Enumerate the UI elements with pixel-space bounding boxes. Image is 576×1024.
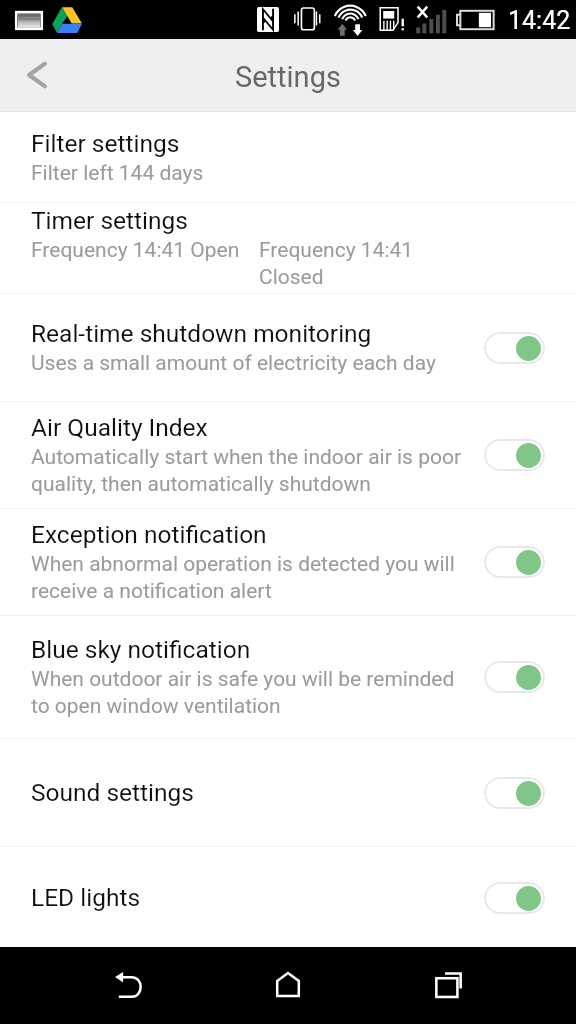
staticText: Exception notification [31, 520, 267, 549]
staticText: Frequency 14:41 Open [31, 238, 240, 263]
button[interactable]: Real-time shutdown monitoring [0, 294, 576, 401]
button[interactable]: Air Quality Index [0, 402, 576, 508]
staticText: Air Quality Index [31, 413, 208, 442]
staticText: Blue sky notification [31, 635, 251, 664]
staticText: Uses a small amount of electricity each … [31, 351, 436, 376]
staticText: Automatically start when the indoor air … [31, 445, 474, 497]
button[interactable]: Toggle [484, 661, 545, 693]
staticText: Timer settings [31, 206, 188, 235]
staticText: Sound settings [31, 778, 195, 807]
button[interactable]: Toggle [484, 882, 545, 914]
staticText: When abnormal operation is detected you … [31, 552, 474, 604]
button[interactable]: Home [240, 947, 336, 1024]
staticText: Frequency 14:41 Closed [259, 238, 419, 290]
button[interactable]: Sound settings [0, 739, 576, 846]
staticText: When outdoor air is safe you will be rem… [31, 667, 474, 719]
button[interactable]: LED lights [0, 847, 576, 948]
button[interactable]: Blue sky notification [0, 616, 576, 738]
button[interactable]: Exception notification [0, 509, 576, 615]
staticText: Settings [235, 60, 341, 94]
button[interactable]: Toggle [484, 332, 545, 364]
staticText: 14:42 [508, 6, 571, 35]
staticText: Filter settings [31, 129, 180, 158]
staticText: Filter left 144 days [31, 161, 204, 186]
button[interactable]: Timer settings [0, 203, 576, 293]
button[interactable]: Toggle [484, 439, 545, 471]
button[interactable]: Toggle [484, 777, 545, 809]
button[interactable]: Back [80, 947, 176, 1024]
button[interactable]: Filter settings [0, 112, 576, 202]
staticText: Real-time shutdown monitoring [31, 319, 372, 348]
staticText: LED lights [31, 883, 141, 912]
button[interactable]: Recent apps [400, 947, 496, 1024]
button[interactable]: Back [0, 39, 76, 111]
button[interactable]: Toggle [484, 546, 545, 578]
